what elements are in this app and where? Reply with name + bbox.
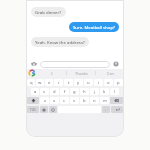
staticText: j [94, 89, 96, 95]
button[interactable]: Thanks [67, 69, 95, 77]
staticText: u [87, 80, 90, 86]
staticText: z [44, 98, 46, 104]
button[interactable]: y [74, 79, 83, 86]
staticText: Yeah. Know the address? [35, 39, 85, 45]
staticText: . [105, 107, 107, 113]
button[interactable]: e [45, 79, 53, 86]
staticText: ?123 [30, 108, 36, 112]
button[interactable]: n [90, 97, 99, 104]
staticText: Sure. Meatball shop? [73, 24, 115, 30]
staticText: f [64, 89, 66, 95]
staticText: Can [107, 71, 114, 76]
button[interactable]: Grab dinner? [31, 7, 66, 17]
button[interactable]: I [38, 69, 66, 77]
button[interactable]: x [50, 97, 59, 104]
staticText: s [43, 89, 46, 95]
button[interactable]: Message input [40, 61, 110, 68]
button[interactable]: u [84, 79, 93, 86]
staticText: Grab dinner? [35, 9, 62, 15]
staticText: t [68, 80, 70, 86]
staticText: k [103, 89, 106, 95]
button[interactable]: z [40, 97, 49, 104]
button[interactable]: Backspace [110, 97, 123, 104]
staticText: n [93, 98, 96, 104]
button[interactable]: j [90, 88, 99, 95]
button[interactable]: r [54, 79, 63, 86]
button[interactable]: f [60, 88, 69, 95]
button[interactable]: Shift [27, 97, 39, 104]
staticText: x [53, 98, 56, 104]
staticText: r [58, 80, 60, 86]
staticText: h [83, 89, 86, 95]
staticText: c [63, 98, 66, 104]
button[interactable]: v [70, 97, 79, 104]
button[interactable]: k [100, 88, 109, 95]
button[interactable]: . [102, 106, 110, 113]
staticText: y [77, 80, 80, 86]
button[interactable]: Camera [30, 60, 38, 68]
button[interactable]: q [27, 79, 35, 86]
staticText: m [103, 98, 107, 104]
staticText: p [117, 80, 120, 86]
staticText: w [38, 80, 42, 86]
button[interactable]: h [80, 88, 89, 95]
staticText: d [53, 89, 56, 95]
button[interactable]: t [64, 79, 73, 86]
button[interactable]: Settings [40, 106, 48, 113]
button[interactable]: d [50, 88, 59, 95]
button[interactable]: w [36, 79, 44, 86]
staticText: Thanks [75, 71, 88, 76]
staticText: v [73, 98, 76, 104]
button[interactable]: s [40, 88, 49, 95]
staticText: e [48, 80, 51, 86]
button[interactable]: Yeah. Know the address? [31, 37, 89, 47]
button[interactable]: Symbols [27, 106, 39, 113]
staticText: q [30, 80, 33, 86]
button[interactable]: Google assistant [26, 69, 38, 77]
button[interactable]: a [31, 88, 39, 95]
staticText: g [73, 89, 76, 95]
button[interactable]: Voice input [112, 60, 120, 68]
button[interactable]: o [104, 79, 113, 86]
staticText: i [98, 80, 100, 86]
button[interactable]: i [94, 79, 103, 86]
button[interactable]: c [60, 97, 69, 104]
button[interactable]: g [70, 88, 79, 95]
button[interactable]: l [110, 88, 119, 95]
staticText: a [34, 89, 37, 95]
button[interactable]: m [100, 97, 109, 104]
button[interactable]: Sure. Meatball shop? [69, 22, 119, 32]
button[interactable]: Enter [111, 106, 123, 113]
staticText: I [51, 71, 53, 76]
staticText: o [107, 80, 110, 86]
button[interactable]: b [80, 97, 89, 104]
button[interactable]: p [114, 79, 123, 86]
button[interactable]: Emoji [49, 106, 57, 113]
staticText: l [114, 89, 116, 95]
staticText: b [83, 98, 86, 104]
button[interactable]: Can [96, 69, 124, 77]
